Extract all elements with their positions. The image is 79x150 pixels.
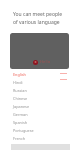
button[interactable]: German [0, 110, 79, 118]
staticText: Japanese [13, 104, 30, 109]
button[interactable]: Chinese [0, 94, 79, 102]
staticText: Spanish [13, 120, 28, 125]
button[interactable]: Spanish [0, 118, 79, 126]
staticText: German [13, 112, 28, 117]
button[interactable]: Portuguese [0, 126, 79, 134]
staticText: Portuguese [13, 128, 34, 133]
staticText: French [13, 136, 26, 141]
staticText: Hello [40, 59, 51, 65]
button[interactable]: Russian [0, 86, 79, 94]
staticText: of various language [13, 19, 60, 26]
staticText: Russian [13, 88, 27, 93]
staticText: Hindi [13, 80, 23, 85]
button[interactable]: Hindi [0, 78, 79, 86]
staticText: Chinese [13, 96, 28, 101]
button[interactable]: English [0, 70, 79, 78]
staticText: English [13, 72, 26, 77]
button[interactable]: French [0, 134, 79, 142]
button[interactable]: Japanese [0, 102, 79, 110]
staticText: You can meet people [13, 11, 63, 18]
